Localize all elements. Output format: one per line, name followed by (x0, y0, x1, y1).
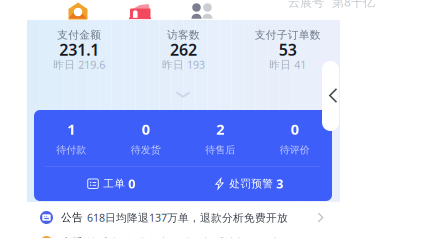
button[interactable]: 展开更多数据 (161, 88, 205, 102)
button[interactable]: 工单 (34, 167, 189, 201)
button[interactable]: 1 (34, 110, 108, 166)
staticText: 0 (142, 119, 150, 139)
button[interactable]: 店铺 (47, 2, 109, 20)
staticText: 待发货 (131, 144, 161, 156)
staticText: 公告 (61, 211, 83, 224)
button[interactable]: 支付金额 (27, 26, 131, 74)
button[interactable]: 商品 (109, 2, 171, 20)
staticText: 支付金额 (57, 28, 101, 41)
button[interactable]: 直播 (40, 232, 353, 238)
staticText: 昨日 193 (162, 57, 205, 72)
staticText: 访客数 (167, 28, 200, 41)
button[interactable]: 2 (183, 110, 257, 166)
button[interactable]: 处罚预警 (189, 167, 309, 201)
button[interactable]: 公告 (40, 207, 353, 228)
staticText: 3 (276, 175, 283, 192)
button[interactable]: 访客数 (131, 26, 236, 74)
staticText: 0 (128, 175, 135, 192)
staticText: 0 (291, 119, 299, 139)
staticText: 待评价 (280, 144, 310, 156)
staticText: 云展号 第8千亿 (288, 0, 375, 10)
staticText: 待售后 (205, 144, 235, 156)
button[interactable]: 粉丝 (171, 2, 233, 20)
staticText: 618日均降退137万单，退款分析免费开放 (87, 210, 288, 225)
button[interactable]: 0 (257, 110, 332, 166)
staticText: 262 (170, 39, 197, 60)
staticText: 1 (67, 119, 75, 139)
staticText: 2 (216, 119, 224, 139)
button[interactable]: 展开侧边面板 (322, 61, 339, 131)
staticText: 工单 (103, 177, 125, 190)
button[interactable]: 0 (108, 110, 183, 166)
staticText: 直播 (61, 236, 83, 238)
button[interactable]: 支付子订单数 (236, 26, 340, 74)
staticText: 53 (279, 39, 297, 60)
staticText: 支付子订单数 (255, 28, 321, 41)
staticText: 待付款 (56, 144, 86, 156)
staticText: 快手直播6大核心玩法，新手成长不踩坑 (87, 235, 280, 238)
staticText: 昨日 41 (269, 57, 306, 72)
staticText: 231.1 (59, 39, 99, 60)
staticText: 昨日 219.6 (53, 57, 105, 72)
staticText: 处罚预警 (229, 177, 273, 190)
